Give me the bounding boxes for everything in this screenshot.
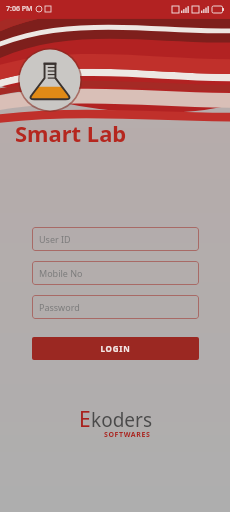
- staticText: Password: [39, 301, 80, 313]
- staticText: SOFTWARES: [104, 430, 151, 440]
- button[interactable]: Password: [32, 295, 199, 319]
- staticText: Smart Lab: [15, 118, 127, 148]
- button[interactable]: Mobile No: [32, 261, 199, 285]
- staticText: User ID: [39, 233, 71, 245]
- button[interactable]: LOGIN: [32, 337, 199, 360]
- staticText: Mobile No: [39, 267, 83, 279]
- staticText: E: [79, 405, 91, 434]
- button[interactable]: User ID: [32, 227, 199, 251]
- staticText: LOGIN: [100, 343, 131, 354]
- staticText: koders: [91, 407, 152, 433]
- staticText: 7:06 PM: [6, 4, 33, 14]
